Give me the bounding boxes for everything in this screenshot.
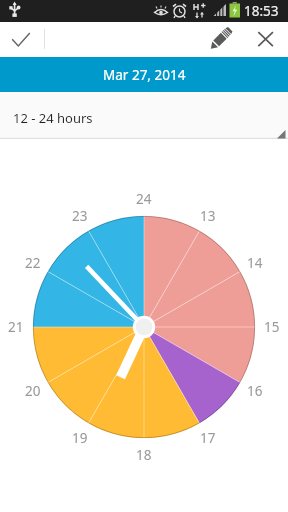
staticText: 24 — [136, 190, 152, 208]
staticText: 18 — [136, 446, 152, 464]
staticText: 12 - 24 hours — [13, 109, 93, 127]
staticText: 16 — [247, 382, 263, 400]
staticText: 19 — [72, 429, 88, 447]
staticText: 22 — [25, 254, 41, 272]
button[interactable]: Edit — [202, 22, 246, 57]
staticText: 20 — [25, 382, 41, 400]
staticText: 21 — [8, 318, 24, 336]
staticText: 23 — [72, 207, 88, 225]
button[interactable]: Close — [244, 22, 288, 57]
staticText: 13 — [200, 207, 216, 225]
button[interactable]: Accept — [0, 22, 44, 57]
staticText: 18:53 — [244, 2, 279, 20]
staticText: 14 — [247, 254, 263, 272]
staticText: 15 — [264, 318, 280, 336]
button[interactable]: 12 - 24 hours — [0, 92, 288, 139]
staticText: Mar 27, 2014 — [103, 66, 186, 84]
staticText: 17 — [200, 429, 216, 447]
